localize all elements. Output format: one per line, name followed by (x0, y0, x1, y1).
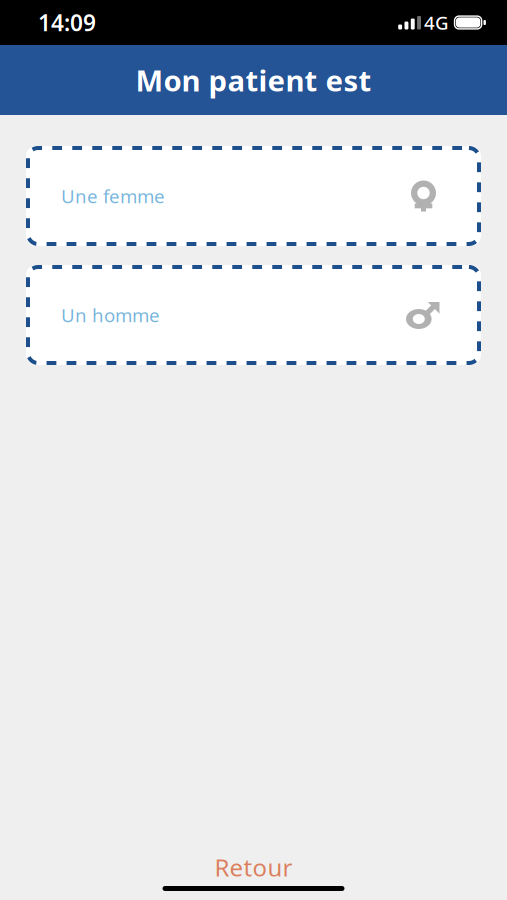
staticText: Une femme (61, 184, 165, 208)
staticText: Mon patient est (135, 60, 371, 99)
staticText: Un homme (61, 303, 160, 327)
button[interactable]: Une femme (26, 146, 481, 246)
staticText: 14:09 (38, 7, 96, 37)
button[interactable]: Retour (190, 841, 316, 883)
staticText: 4G (424, 10, 449, 35)
button[interactable]: Un homme (26, 265, 481, 365)
staticText: Retour (214, 851, 292, 883)
